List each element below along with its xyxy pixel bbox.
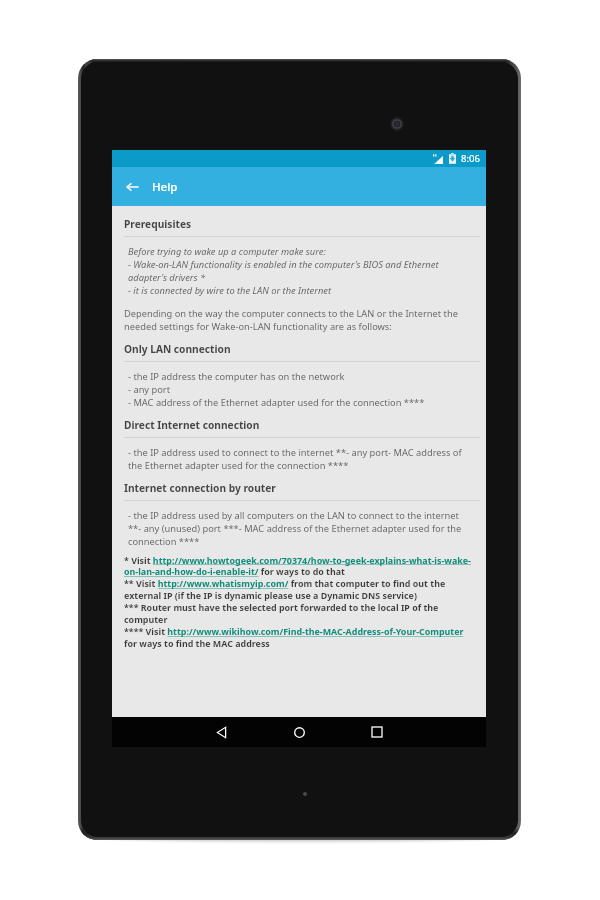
staticText: Only LAN connection	[124, 342, 231, 356]
staticText: - the IP address the computer has on the…	[128, 370, 425, 409]
staticText: Direct Internet connection	[124, 418, 260, 432]
staticText: - the IP address used by all computers o…	[128, 509, 474, 548]
staticText: Before trying to wake up a computer make…	[128, 245, 474, 297]
button[interactable]: * Visit http://www.howtogeek.com/70374/h…	[112, 554, 486, 650]
button[interactable]: Home	[279, 717, 319, 747]
button[interactable]: Back	[201, 717, 241, 747]
button[interactable]: Back	[112, 167, 152, 206]
staticText: * Visit http://www.howtogeek.com/70374/h…	[124, 554, 474, 650]
staticText: Help	[152, 179, 178, 195]
button[interactable]: Recents	[357, 717, 397, 747]
staticText: Depending on the way the computer connec…	[124, 307, 474, 333]
staticText: Prerequisites	[124, 217, 192, 231]
staticText: 8:06	[461, 152, 480, 165]
staticText: Internet connection by router	[124, 481, 276, 495]
staticText: - the IP address used to connect to the …	[128, 446, 474, 472]
